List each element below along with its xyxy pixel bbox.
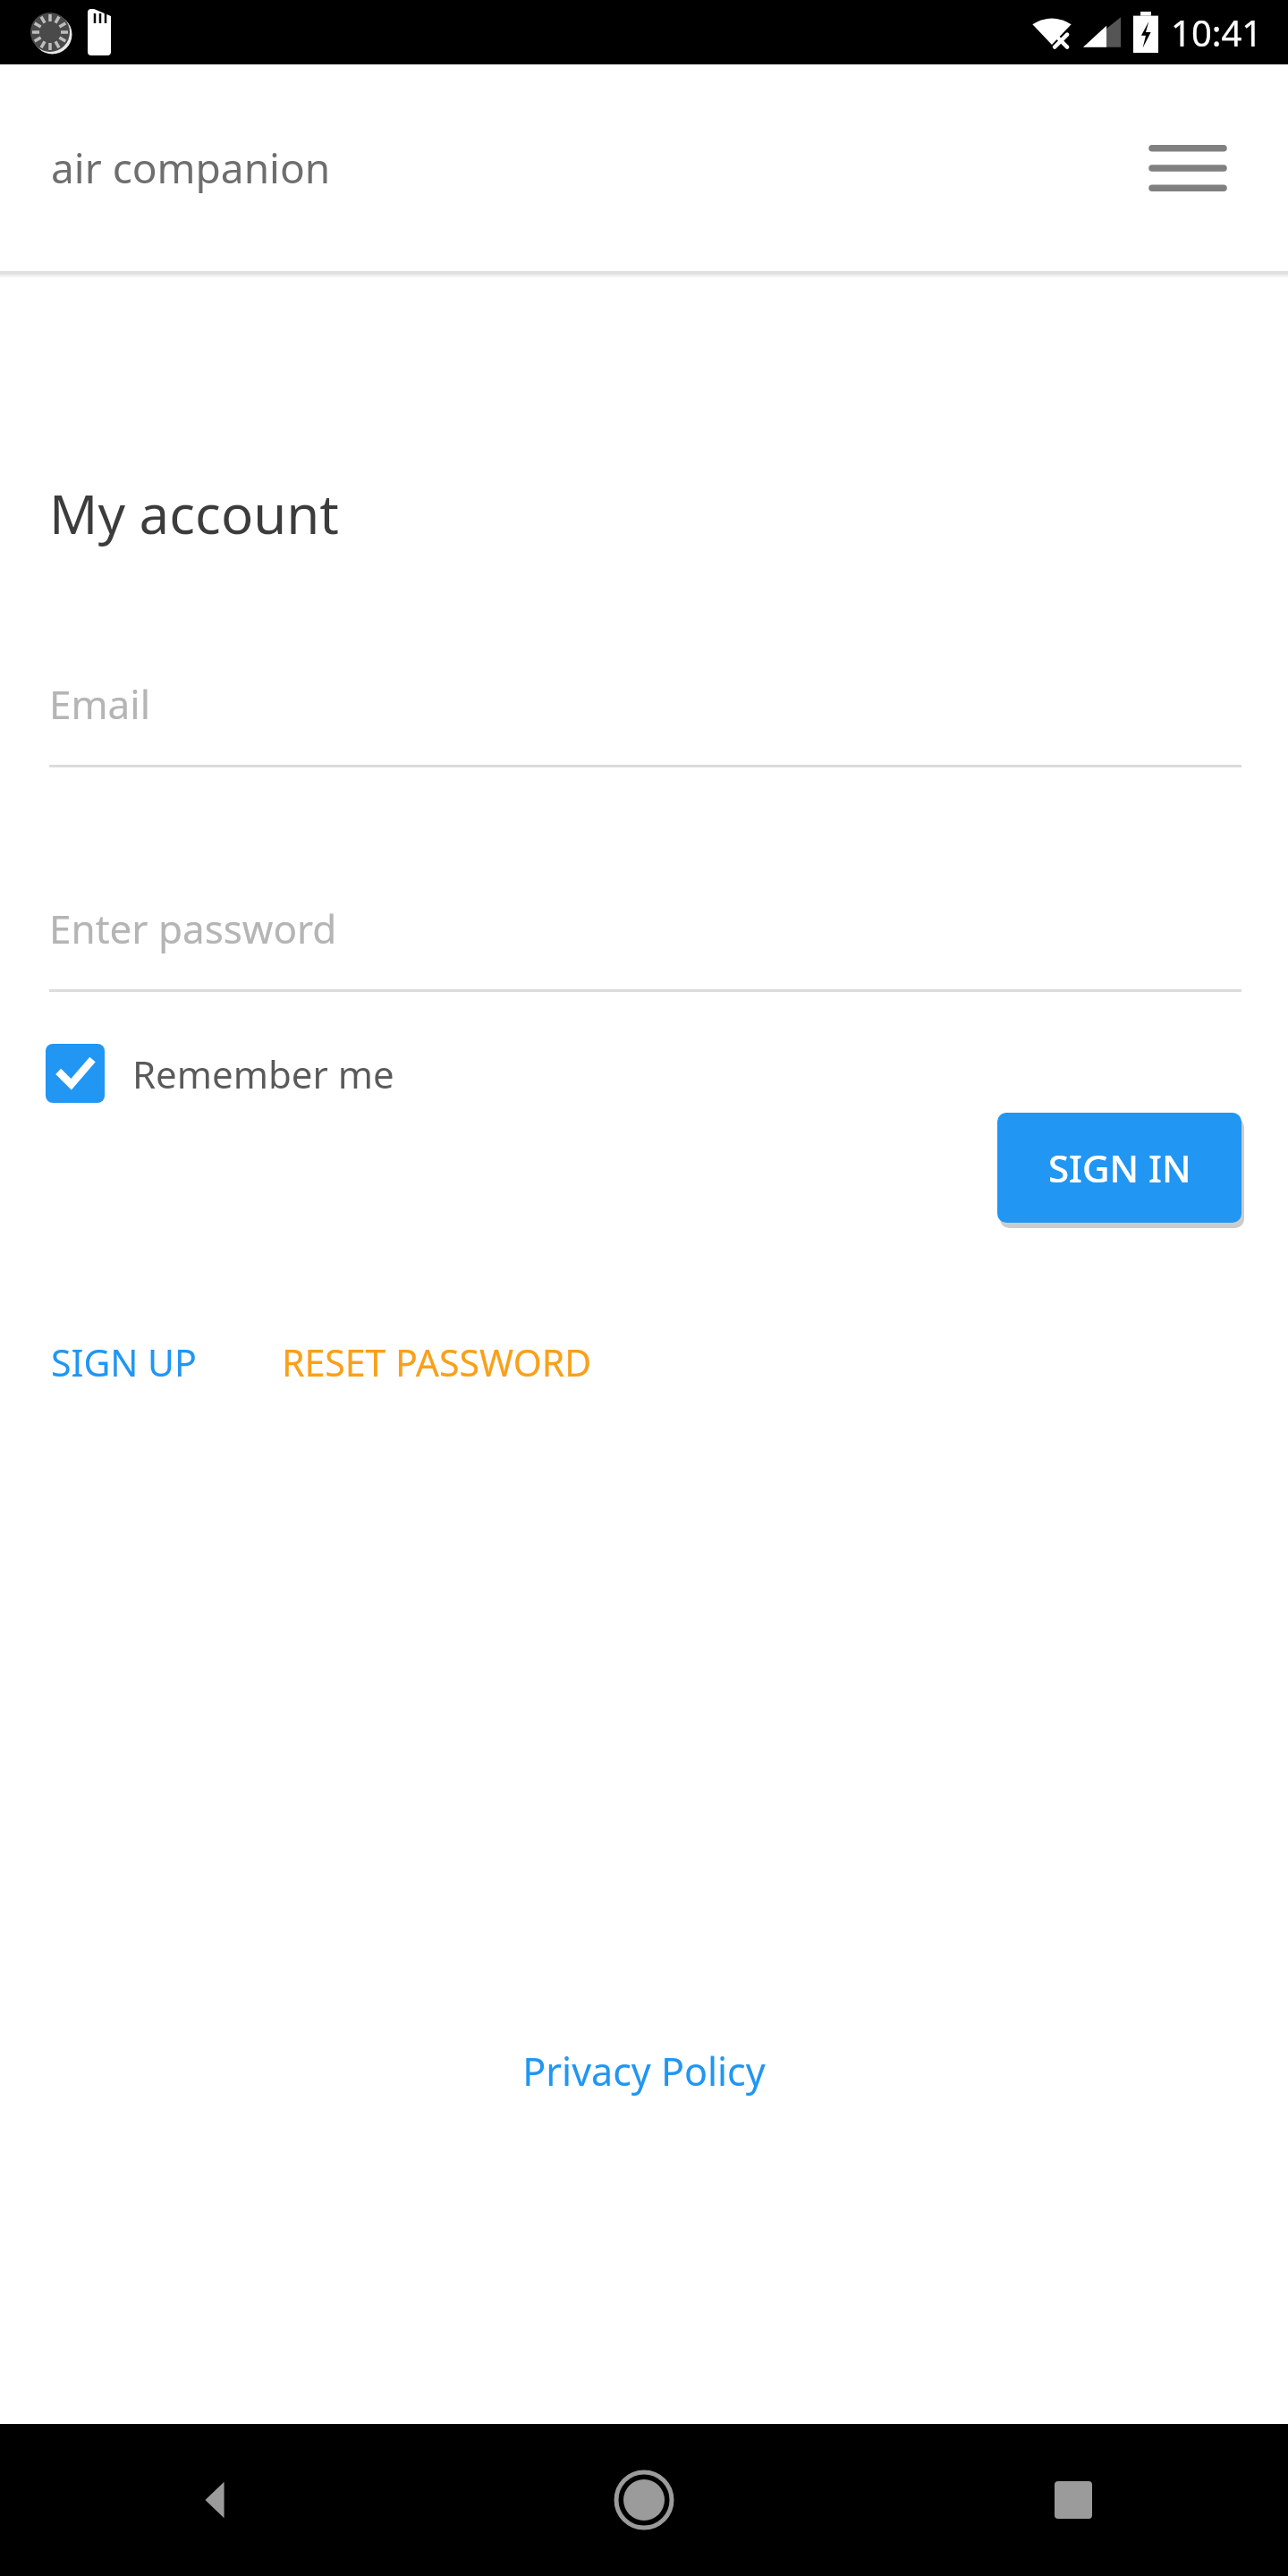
staticText: Remember me [132,1048,394,1099]
button[interactable]: Remember me [46,1044,394,1103]
button[interactable]: RESET PASSWORD [282,1337,592,1387]
staticText: Enter password [49,902,337,955]
button[interactable]: Recent apps [859,2424,1288,2576]
button[interactable]: Privacy Policy [522,2045,766,2097]
button[interactable]: Back [0,2424,429,2576]
staticText: 10:41 [1171,8,1263,56]
button[interactable]: SIGN UP [51,1337,197,1387]
staticText: Privacy Policy [522,2045,766,2097]
staticText: SIGN IN [1048,1142,1191,1193]
button[interactable]: SIGN IN [997,1113,1241,1223]
button[interactable]: Enter password [49,902,1241,992]
staticText: Email [49,677,150,731]
staticText: RESET PASSWORD [282,1337,592,1387]
staticText: SIGN UP [51,1337,197,1387]
staticText: air companion [51,140,331,196]
button[interactable]: Home [429,2424,859,2576]
button[interactable]: Open navigation menu [1140,120,1236,216]
staticText: My account [49,477,339,550]
button[interactable]: Email [49,677,1241,767]
